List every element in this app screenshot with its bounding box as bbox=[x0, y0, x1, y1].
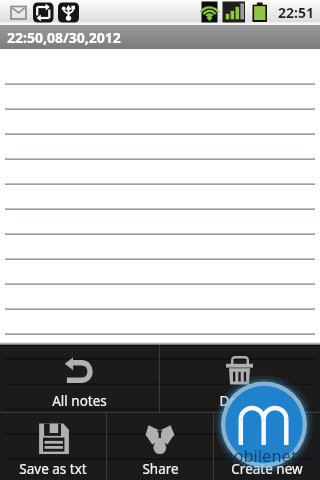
staticText: All notes bbox=[52, 392, 107, 410]
staticText: Save as txt bbox=[19, 460, 87, 478]
button[interactable]: Create new bbox=[214, 413, 320, 480]
button[interactable]: Share bbox=[107, 413, 213, 480]
button[interactable]: Delete bbox=[160, 345, 320, 412]
staticText: mobilenet.cz bbox=[218, 444, 317, 466]
staticText: Share bbox=[142, 460, 179, 478]
button[interactable]: All notes bbox=[0, 345, 159, 412]
staticText: Delete bbox=[219, 392, 261, 410]
staticText: Create new bbox=[231, 460, 303, 478]
button[interactable]: Save as txt bbox=[0, 413, 106, 480]
staticText: 22:51 bbox=[278, 3, 314, 22]
staticText: 22:50,08/30,2012 bbox=[7, 28, 121, 47]
